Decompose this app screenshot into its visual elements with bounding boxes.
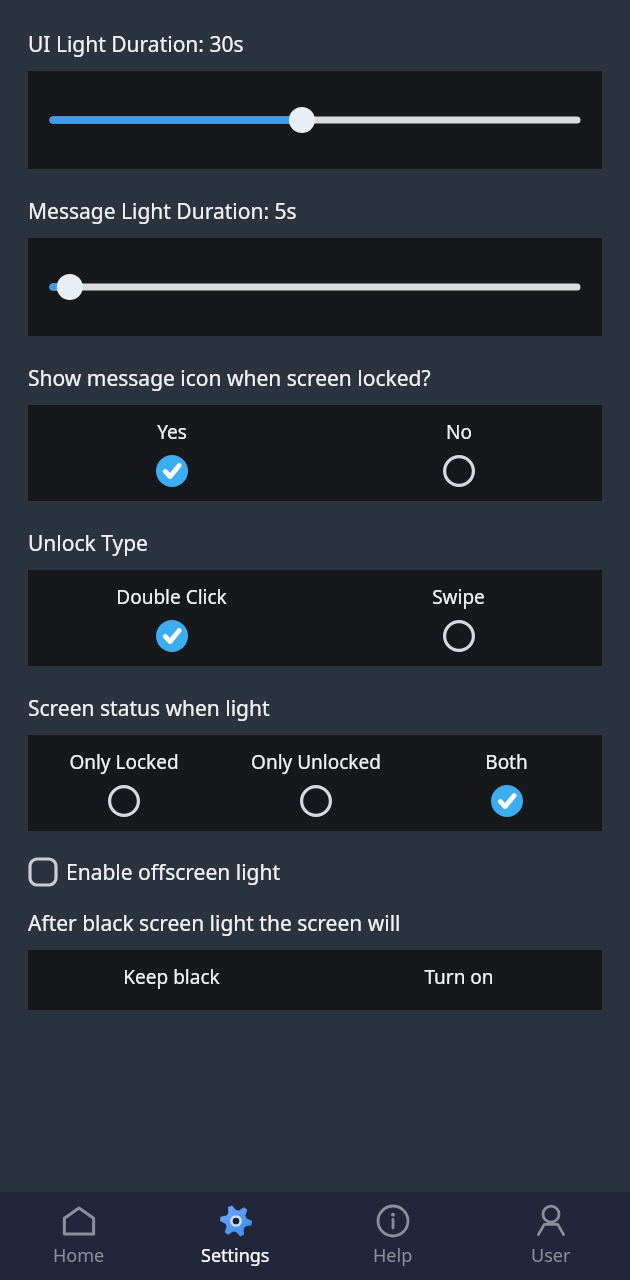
staticText: Message Light Duration: 5s [28,197,297,226]
button[interactable]: Enable offscreen light [28,857,281,887]
staticText: Unlock Type [28,529,148,558]
button[interactable]: Only Unlocked [220,735,411,831]
staticText: Home [53,1243,105,1268]
staticText: Yes [157,419,187,445]
button[interactable]: User [472,1192,630,1268]
staticText: Swipe [432,584,485,610]
staticText: Keep black [123,964,220,990]
staticText: Settings [201,1243,270,1268]
button[interactable]: Swipe [315,570,602,666]
staticText: Show message icon when screen locked? [28,364,431,393]
staticText: Only Locked [69,749,179,775]
staticText: Help [373,1243,413,1268]
button[interactable]: Double Click [28,570,315,666]
staticText: Both [485,749,528,775]
button[interactable]: Help [314,1192,472,1268]
button[interactable]: No [315,405,602,501]
button[interactable]: Yes [28,405,315,501]
button[interactable]: Both [411,735,602,831]
staticText: Enable offscreen light [66,858,281,887]
staticText: Only Unlocked [251,749,381,775]
staticText: UI Light Duration: 30s [28,30,244,59]
button[interactable]: Settings [157,1192,314,1268]
staticText: Turn on [424,964,494,990]
button[interactable]: Turn on [315,950,602,1010]
button[interactable]: Home [0,1192,157,1268]
staticText: No [446,419,472,445]
button[interactable]: Only Locked [28,735,220,831]
staticText: User [531,1243,571,1268]
staticText: After black screen light the screen will [28,909,401,938]
button[interactable] [28,71,602,169]
button[interactable]: Keep black [28,950,315,1010]
button[interactable] [28,238,602,336]
staticText: Double Click [116,584,227,610]
staticText: Screen status when light [28,694,270,723]
